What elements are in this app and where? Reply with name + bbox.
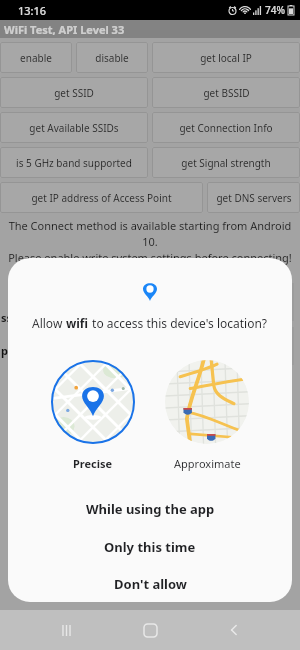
staticText: to access this device's location? [89,315,268,331]
staticText: get local IP [200,51,252,65]
staticText: pass: [1,343,29,358]
staticText: Only this time [104,538,196,556]
staticText: get SSID [54,86,94,100]
staticText: 13:16 [18,3,47,18]
button[interactable]: get DNS servers [207,182,300,213]
staticText: ssid: [1,310,26,325]
staticText: connect [131,280,169,294]
staticText: enable [20,51,52,65]
button[interactable]: get IP address of Access Point [0,182,203,213]
staticText: While using the app [86,500,215,518]
button[interactable]: get Signal strength [152,147,300,178]
button[interactable]: Don't allow [8,566,292,602]
staticText: is 5 GHz band supported [16,156,132,170]
button[interactable]: get Available SSIDs [0,112,148,143]
button[interactable]: Only this time [8,528,292,566]
staticText: get BSSID [203,86,250,100]
staticText: get Connection Info [179,121,273,135]
button[interactable]: While using the app [8,490,292,528]
button[interactable]: get Connection Info [152,112,300,143]
staticText: Don't allow [114,575,187,593]
staticText: get Signal strength [181,156,271,170]
button[interactable]: connect [90,271,210,302]
button[interactable]: Approximate [159,360,255,471]
staticText: 74% [265,3,285,17]
staticText: get Available SSIDs [29,121,119,135]
staticText: Allow [32,315,66,331]
button[interactable]: Precise [45,360,141,471]
staticText: disable [95,51,129,65]
staticText: Approximate [174,456,241,471]
button[interactable]: get local IP [152,42,300,73]
button[interactable]: Back [216,612,252,648]
button[interactable]: is 5 GHz band supported [0,147,148,178]
button[interactable]: get SSID [0,77,148,108]
button[interactable]: disable [76,42,148,73]
staticText: The Connect method is available starting… [0,218,300,265]
button[interactable]: Recent apps [48,612,84,648]
button[interactable]: get BSSID [152,77,300,108]
staticText: wifi [66,315,89,331]
button[interactable]: enable [0,42,72,73]
staticText: get DNS servers [216,191,292,205]
button[interactable]: Home [132,612,168,648]
staticText: WiFi Test, API Level 33 [4,22,125,37]
staticText: Precise [73,456,113,471]
staticText: get IP address of Access Point [31,191,172,205]
